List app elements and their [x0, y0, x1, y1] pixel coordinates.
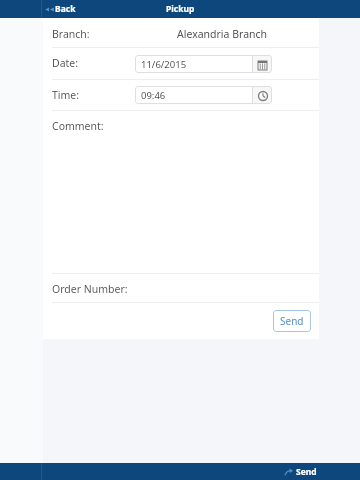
button[interactable]: Send — [285, 463, 317, 480]
staticText: Send — [280, 314, 304, 328]
other: Pick time — [253, 86, 272, 104]
staticText: Order Number: — [52, 282, 128, 296]
staticText: 09:46 — [141, 89, 166, 102]
button[interactable]: 11/6/2015 — [135, 55, 272, 73]
staticText: Back — [55, 3, 76, 15]
button[interactable]: 09:46 — [135, 86, 272, 104]
staticText: Branch: — [52, 27, 90, 41]
button[interactable]: Branch: — [52, 18, 319, 47]
staticText: Time: — [52, 88, 80, 102]
button[interactable]: Send — [273, 310, 311, 332]
button[interactable]: Comment: — [43, 111, 319, 273]
button[interactable]: Order Number: — [52, 274, 319, 302]
staticText: 11/6/2015 — [141, 58, 187, 71]
staticText: Alexandria Branch — [177, 27, 268, 41]
other: Pick date — [253, 55, 272, 73]
button[interactable]: Back — [45, 0, 76, 18]
button[interactable]: Date: — [52, 48, 319, 79]
staticText: Date: — [52, 56, 79, 70]
staticText: Send — [296, 466, 317, 478]
staticText: Comment: — [52, 119, 104, 133]
staticText: Pickup — [166, 3, 195, 15]
button[interactable]: Time: — [52, 80, 319, 110]
